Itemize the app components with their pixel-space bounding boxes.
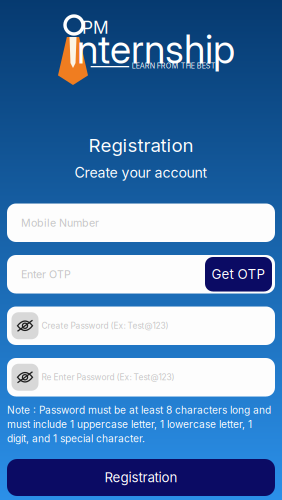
staticText: Create Password (Ex: Test@123) bbox=[41, 321, 168, 331]
button[interactable]: Re Enter Password (Ex: Test@123) bbox=[41, 358, 268, 396]
staticText: Registration bbox=[104, 469, 177, 485]
staticText: Create your account bbox=[74, 164, 207, 181]
staticText: Enter OTP bbox=[21, 268, 71, 281]
button[interactable]: Get OTP bbox=[205, 257, 272, 291]
button[interactable]: Create Password (Ex: Test@123) bbox=[41, 306, 268, 345]
button[interactable]: Show password bbox=[11, 312, 38, 339]
button[interactable]: Show password bbox=[11, 364, 38, 391]
staticText: Get OTP bbox=[211, 266, 265, 282]
button[interactable]: Registration bbox=[7, 459, 275, 496]
button[interactable]: Enter OTP bbox=[7, 255, 275, 293]
staticText: Re Enter Password (Ex: Test@123) bbox=[41, 372, 174, 382]
staticText: Registration bbox=[88, 134, 193, 157]
staticText: nternship bbox=[77, 26, 235, 73]
button[interactable]: Mobile Number bbox=[7, 203, 275, 242]
staticText: Mobile Number bbox=[21, 216, 99, 229]
staticText: PM bbox=[82, 17, 109, 38]
staticText: LEARN FROM THE BEST bbox=[132, 61, 216, 70]
staticText: Note : Password must be at least 8 chara… bbox=[7, 404, 271, 445]
